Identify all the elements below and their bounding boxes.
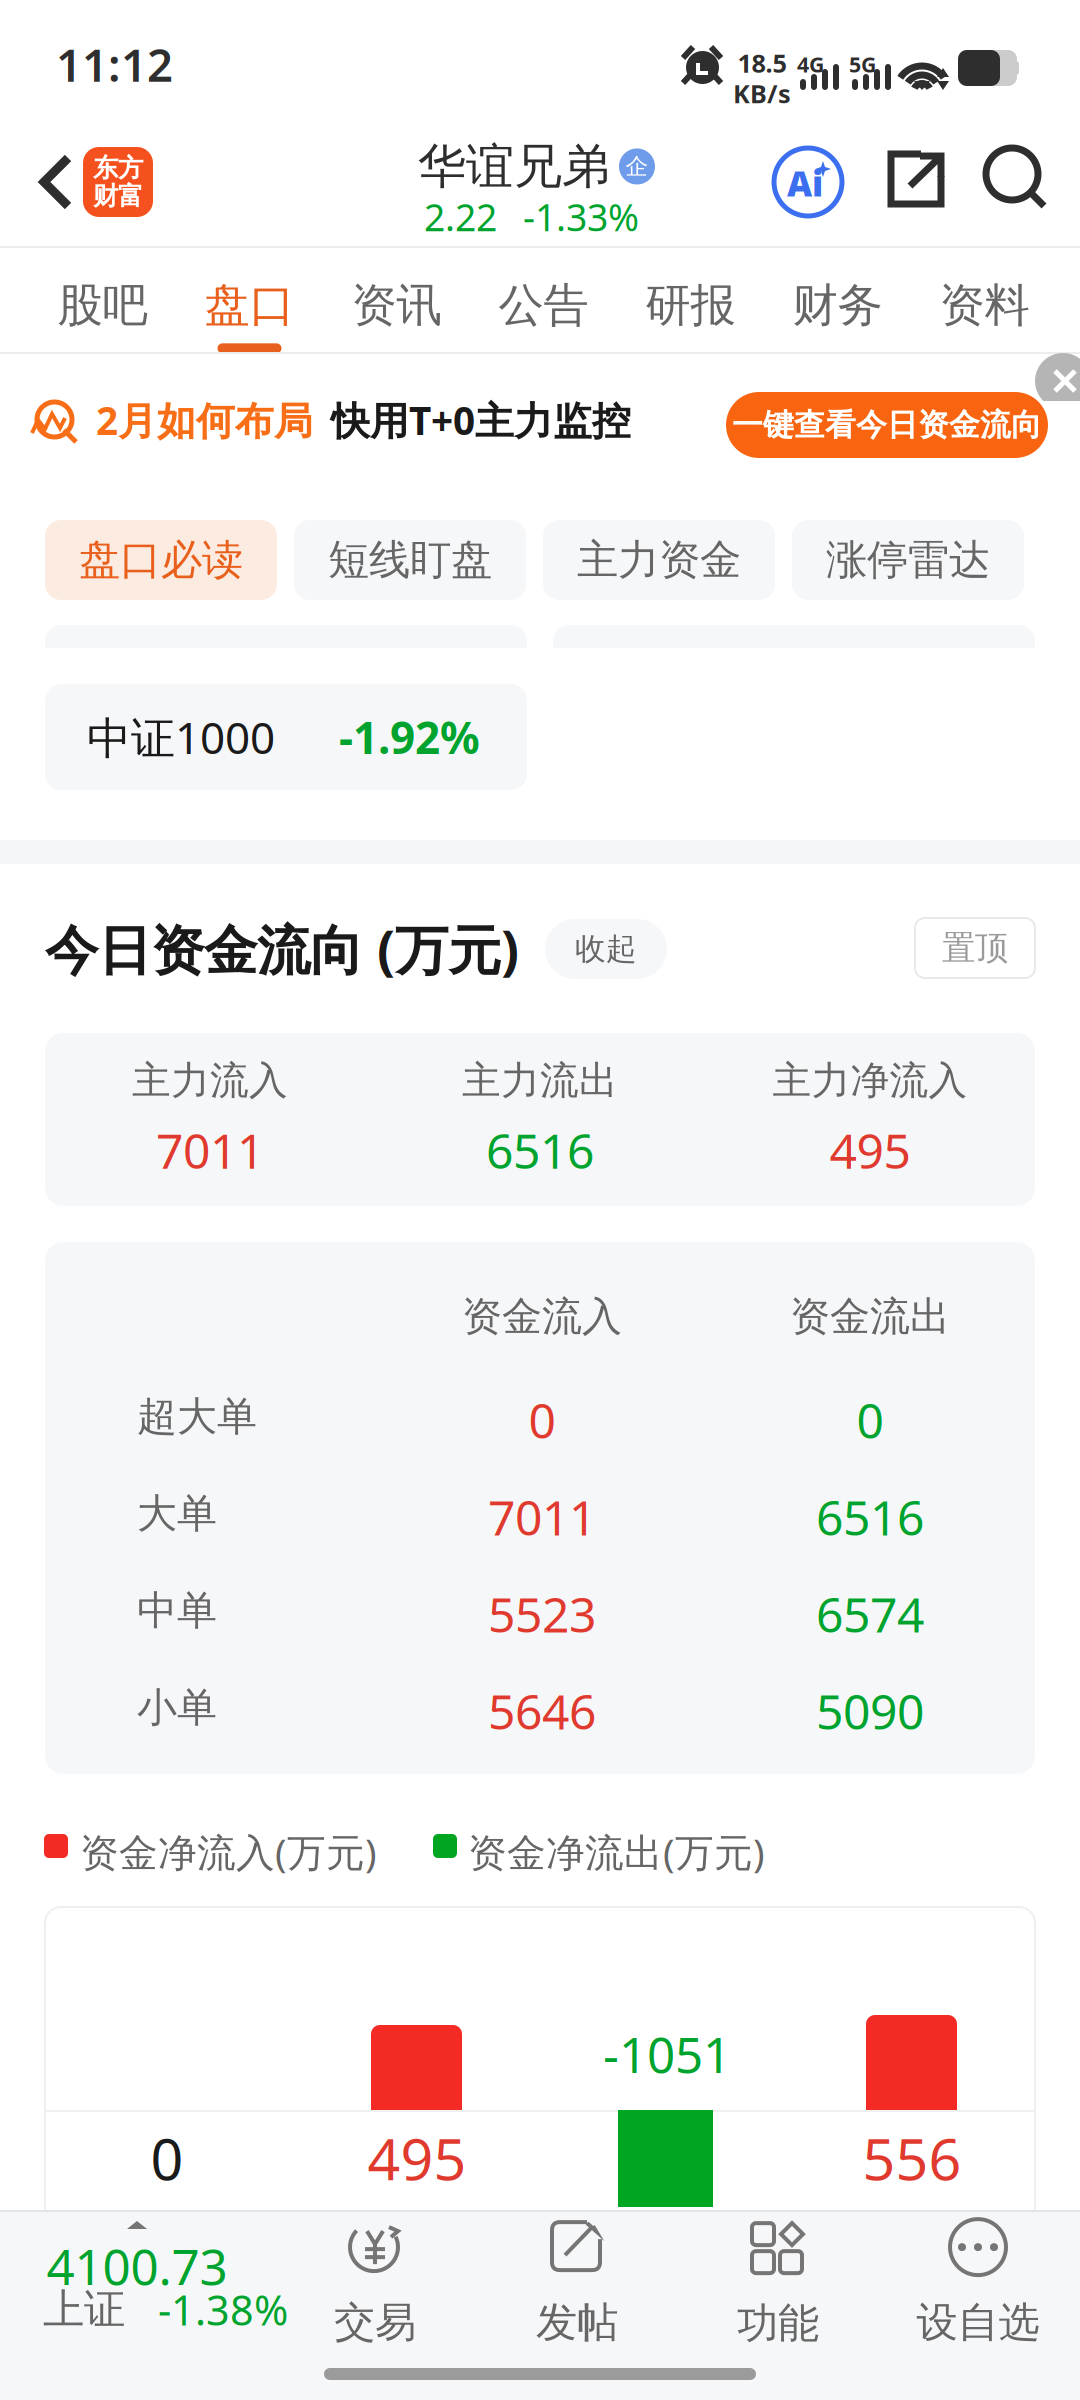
staticText: 6574 — [816, 1582, 924, 1646]
staticText: 资金流入 — [462, 1292, 622, 1341]
staticText: 主力流入 — [132, 1057, 288, 1104]
staticText: 置顶 — [942, 927, 1008, 968]
staticText: 18.5 — [737, 46, 786, 80]
staticText: 5523 — [488, 1582, 596, 1646]
staticText: 交易 — [334, 2297, 416, 2348]
staticText: 主力净流入 — [772, 1057, 967, 1104]
staticText: 盘口 — [204, 278, 294, 333]
button[interactable]: 短线盯盘 — [294, 520, 526, 600]
staticText: 盘口必读 — [79, 535, 243, 585]
button[interactable]: 资料 — [911, 248, 1058, 352]
staticText: 6516 — [816, 1485, 924, 1549]
staticText: 财务 — [792, 278, 882, 333]
button[interactable]: 一键查看今日资金流向 — [726, 392, 1048, 458]
staticText: 主力流出 — [462, 1057, 618, 1104]
staticText: 5G — [849, 50, 876, 78]
button[interactable]: 设自选 — [894, 2221, 1062, 2346]
staticText: 公告 — [498, 278, 588, 333]
staticText: 股吧 — [57, 278, 147, 333]
button[interactable]: 4100.73 — [0, 2216, 290, 2346]
staticText: 企 — [625, 153, 648, 180]
staticText: 资讯 — [351, 278, 441, 333]
staticText: 资金净流出(万元) — [468, 1826, 765, 1877]
button[interactable]: 盘口 — [176, 248, 323, 352]
staticText: 5090 — [816, 1679, 924, 1743]
button[interactable]: 中证1000 — [45, 684, 527, 790]
button[interactable]: 资讯 — [323, 248, 470, 352]
staticText: 快用T+0主力监控 — [331, 394, 631, 446]
staticText: 今日资金流向 (万元) — [45, 914, 519, 984]
staticText: 11:12 — [56, 34, 173, 94]
staticText: KB/s — [733, 77, 791, 110]
staticText: 0 — [528, 1388, 555, 1452]
staticText: -1.33% — [523, 192, 639, 242]
button[interactable]: East Money home — [83, 147, 153, 217]
staticText: 中单 — [137, 1586, 217, 1635]
button[interactable]: Close banner — [1035, 353, 1080, 401]
staticText: 一键查看今日资金流向 — [732, 406, 1042, 444]
staticText: 7011 — [488, 1485, 596, 1549]
staticText: 495 — [829, 1118, 910, 1182]
button[interactable]: 发帖 — [493, 2221, 661, 2346]
staticText: 收起 — [575, 930, 637, 968]
button[interactable]: Share — [887, 150, 945, 208]
staticText: 功能 — [737, 2298, 819, 2349]
staticText: 短线盯盘 — [328, 535, 492, 585]
staticText: 研报 — [645, 278, 735, 333]
staticText: 资金净流入(万元) — [80, 1826, 377, 1877]
staticText: 华谊兄弟 — [418, 137, 610, 196]
staticText: 7011 — [156, 1118, 264, 1182]
staticText: -1.92% — [339, 708, 480, 766]
staticText: 0 — [150, 2120, 183, 2196]
button[interactable]: 交易 — [291, 2221, 459, 2346]
staticText: 东方 — [93, 152, 143, 183]
staticText: -1.38% — [158, 2282, 288, 2337]
staticText: 0 — [856, 1388, 883, 1452]
button[interactable]: 置顶 — [915, 918, 1035, 978]
staticText: 主力资金 — [577, 535, 741, 585]
staticText: 中证1000 — [87, 708, 275, 766]
button[interactable]: 股吧 — [29, 248, 176, 352]
staticText: 6516 — [486, 1118, 594, 1182]
staticText: 资金流出 — [790, 1292, 950, 1341]
staticText: 4G — [797, 50, 824, 78]
button[interactable]: 涨停雷达 — [792, 520, 1024, 600]
button[interactable]: 公告 — [470, 248, 617, 352]
staticText: 4100.73 — [46, 2233, 227, 2298]
staticText: Ai — [787, 160, 823, 206]
staticText: 超大单 — [137, 1392, 257, 1441]
staticText: 2月如何布局 — [96, 394, 313, 446]
button[interactable]: Search — [986, 148, 1048, 210]
staticText: 设自选 — [916, 2297, 1039, 2348]
staticText: 5646 — [488, 1679, 596, 1743]
staticText: 涨停雷达 — [826, 535, 990, 585]
staticText: 小单 — [137, 1683, 217, 1732]
button[interactable]: 研报 — [617, 248, 764, 352]
staticText: 大单 — [137, 1489, 217, 1538]
button[interactable]: Back — [18, 134, 94, 230]
button[interactable]: 功能 — [694, 2221, 862, 2346]
button[interactable]: 收起 — [545, 919, 667, 979]
button[interactable]: 盘口必读 — [45, 520, 277, 600]
staticText: 资料 — [939, 278, 1029, 333]
staticText: 上证 — [43, 2284, 125, 2335]
button[interactable]: 财务 — [764, 248, 911, 352]
button[interactable]: 主力资金 — [543, 520, 775, 600]
staticText: 495 — [367, 2120, 466, 2196]
staticText: 556 — [862, 2120, 961, 2196]
button[interactable]: AI assistant — [772, 146, 844, 218]
staticText: 财富 — [93, 180, 143, 212]
staticText: 2.22 — [424, 192, 497, 242]
staticText: -1051 — [603, 2021, 731, 2086]
staticText: 发帖 — [536, 2297, 618, 2348]
